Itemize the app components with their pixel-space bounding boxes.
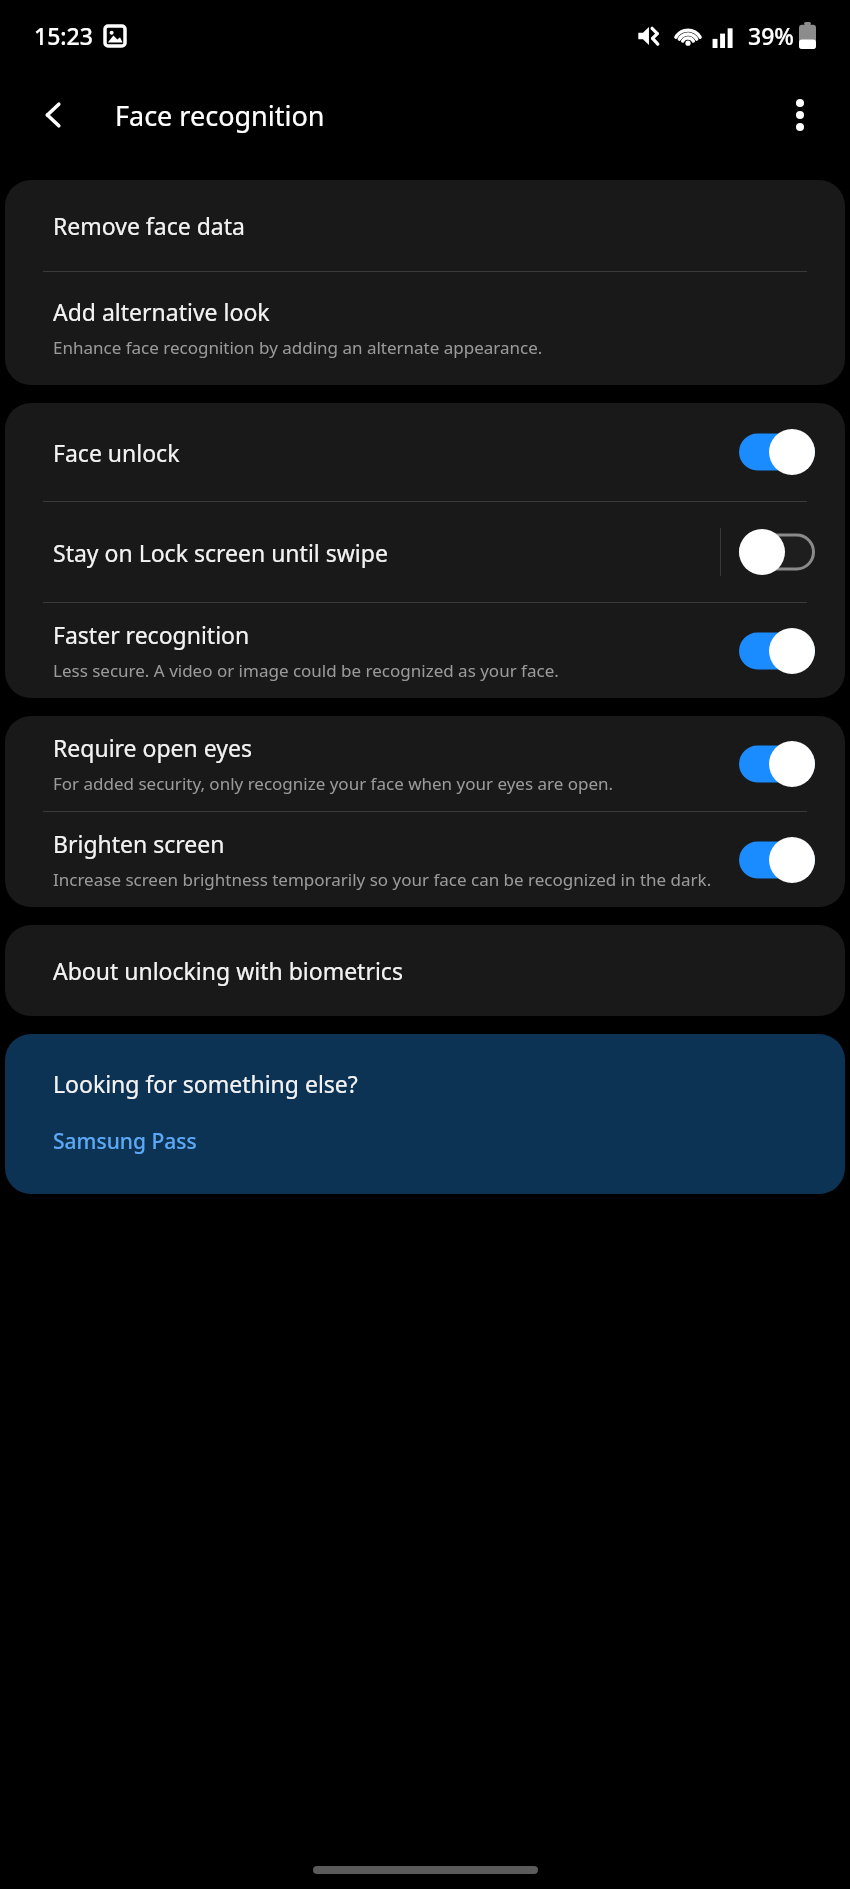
button[interactable]: Looking for something else? (5, 1034, 845, 1194)
button[interactable]: Toggle on (739, 741, 815, 787)
button[interactable]: Add alternative look (5, 272, 845, 385)
staticText: Face unlock (53, 437, 180, 468)
button[interactable]: Stay on Lock screen until swipe (5, 502, 845, 602)
staticText: Stay on Lock screen until swipe (53, 537, 388, 568)
staticText: Face recognition (115, 97, 325, 134)
button[interactable]: About unlocking with biometrics (5, 925, 845, 1016)
staticText: About unlocking with biometrics (53, 955, 403, 986)
button[interactable]: Require open eyes (5, 716, 845, 811)
button[interactable]: Toggle on (739, 429, 815, 475)
staticText: Brighten screen (53, 828, 225, 859)
staticText: Less secure. A video or image could be r… (53, 659, 559, 682)
button[interactable]: Samsung Pass (53, 1127, 197, 1156)
button[interactable]: Toggle on (739, 628, 815, 674)
button[interactable]: More options (772, 87, 828, 143)
staticText: 15:23 (34, 20, 93, 51)
staticText: Remove face data (53, 210, 245, 241)
staticText: Add alternative look (53, 296, 270, 327)
staticText: Increase screen brightness temporarily s… (53, 868, 712, 891)
button[interactable]: Toggle off (739, 529, 815, 575)
button[interactable]: Toggle on (739, 837, 815, 883)
staticText: 39% (748, 20, 794, 51)
button[interactable]: Face unlock (5, 403, 845, 501)
staticText: For added security, only recognize your … (53, 772, 614, 795)
staticText: Samsung Pass (53, 1127, 197, 1156)
staticText: Require open eyes (53, 732, 253, 763)
button[interactable]: Faster recognition (5, 603, 845, 698)
staticText: Enhance face recognition by adding an al… (53, 336, 543, 359)
staticText: Looking for something else? (53, 1068, 358, 1099)
button[interactable]: Remove face data (5, 180, 845, 271)
staticText: Faster recognition (53, 619, 250, 650)
button[interactable]: Brighten screen (5, 812, 845, 907)
button[interactable]: Back (26, 87, 82, 143)
